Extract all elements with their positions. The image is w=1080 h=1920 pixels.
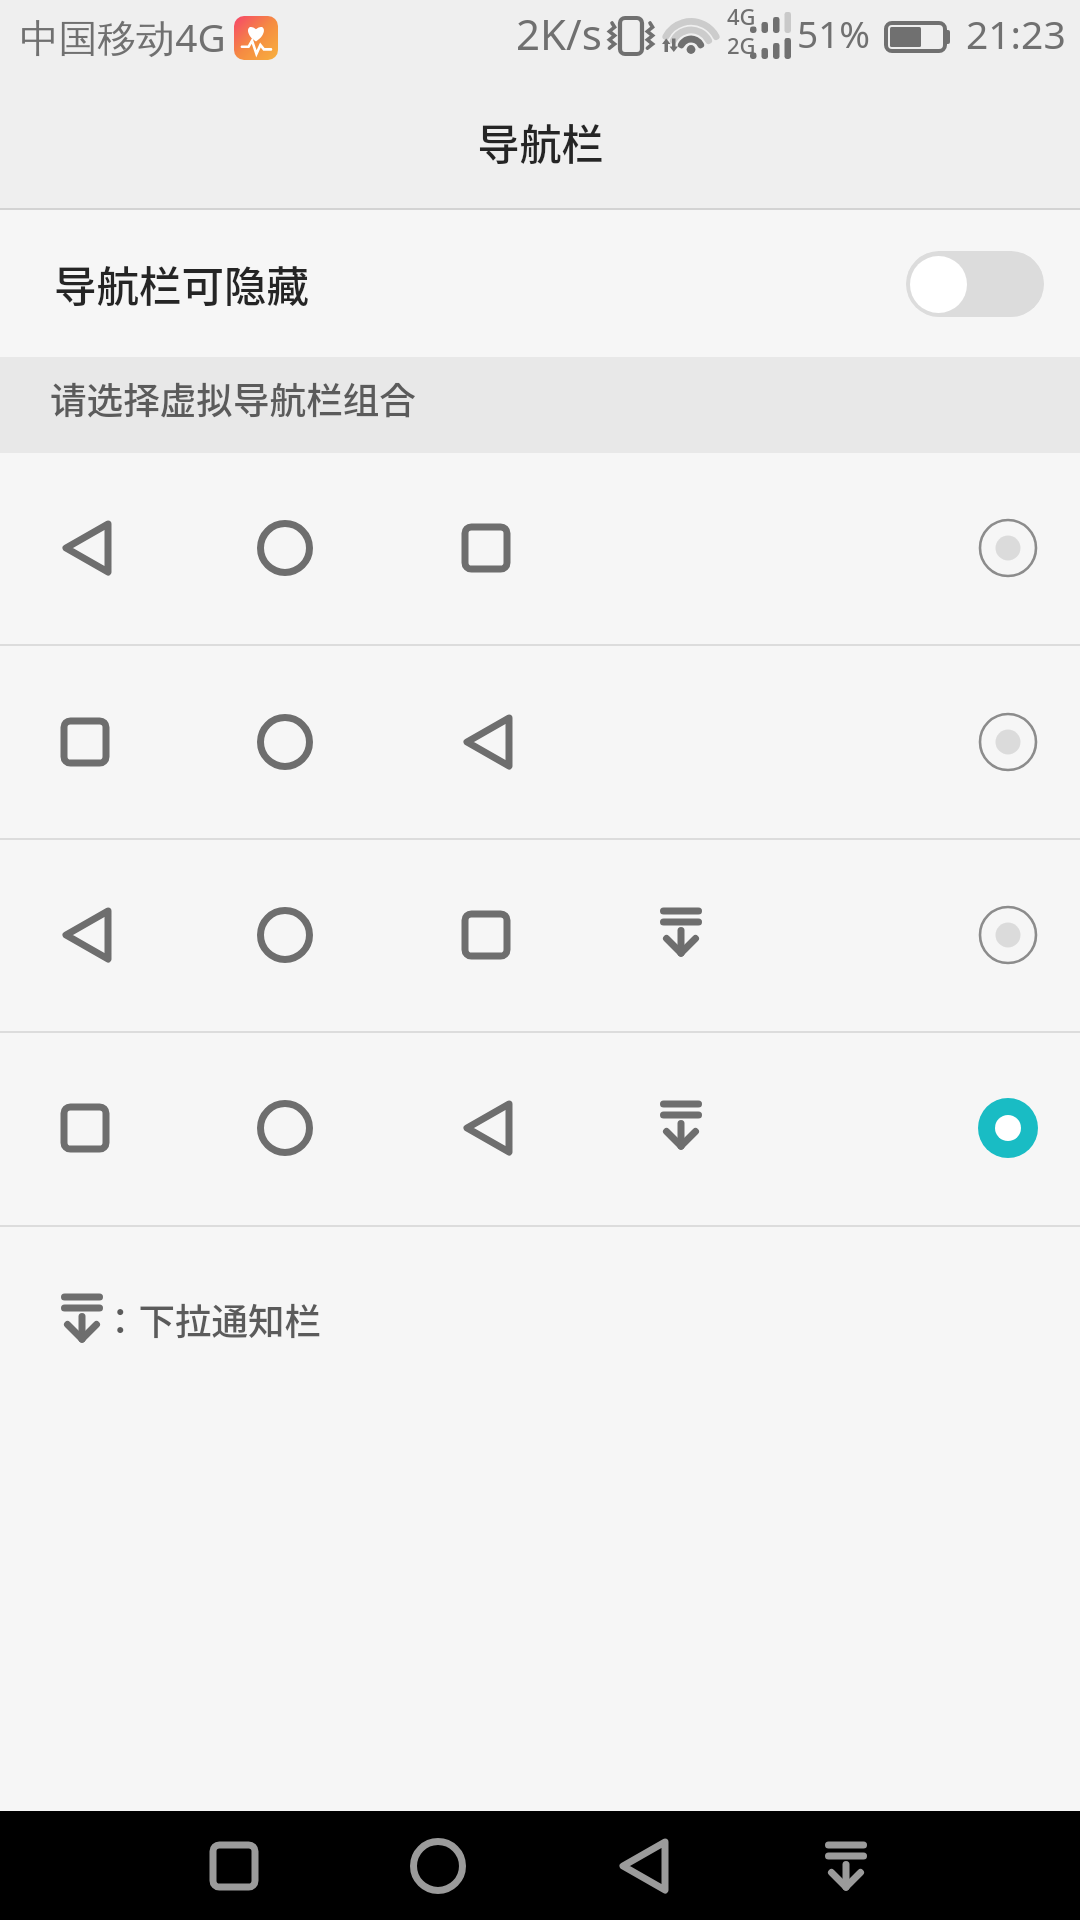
staticText: ：下拉通知栏 xyxy=(102,1293,321,1341)
staticText: 2K/s xyxy=(516,5,602,62)
staticText: 导航栏可隐藏 xyxy=(54,253,310,315)
button[interactable]: 导航栏可隐藏 xyxy=(0,210,1080,357)
button[interactable] xyxy=(0,840,1080,1031)
button[interactable]: Back xyxy=(582,1811,702,1920)
staticText: 21:23 xyxy=(966,7,1066,60)
button[interactable] xyxy=(0,453,1080,644)
staticText: 中国移动4G xyxy=(20,11,226,64)
staticText: 2G xyxy=(727,30,756,56)
staticText: 导航栏 xyxy=(477,111,604,172)
button[interactable]: Recent apps xyxy=(174,1811,294,1920)
button[interactable] xyxy=(0,646,1080,838)
staticText: 4G xyxy=(727,1,756,27)
button[interactable]: Notifications xyxy=(786,1811,906,1920)
button[interactable] xyxy=(0,1033,1080,1225)
staticText: 请选择虚拟导航栏组合 xyxy=(50,372,416,425)
staticText: 51% xyxy=(797,8,871,58)
button[interactable]: Home xyxy=(378,1811,498,1920)
